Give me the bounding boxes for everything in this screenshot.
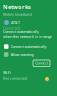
staticText: Not connected (3, 76, 27, 81)
staticText: Connect automatically when this network … (3, 29, 52, 39)
button[interactable]: AT&T (4, 20, 20, 25)
button[interactable]: Connect (33, 60, 50, 66)
staticText: Mobile broadband (3, 12, 32, 17)
staticText: AT&T (11, 20, 20, 25)
staticText: Connect (35, 61, 48, 66)
staticText: Connected (3, 26, 20, 30)
staticText: Wi-Fi (3, 70, 11, 75)
button[interactable]: Connect automatically (4, 44, 46, 49)
button[interactable]: Allow roaming (4, 52, 33, 57)
staticText: Allow roaming (10, 52, 33, 57)
staticText: Connect automatically (10, 44, 46, 49)
staticText: Networks (3, 3, 31, 11)
